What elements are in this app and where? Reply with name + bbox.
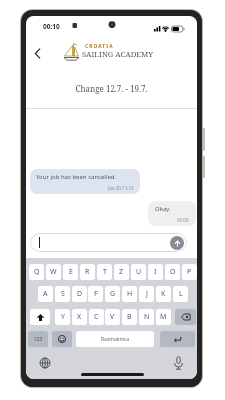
staticText: P [187,267,192,277]
button[interactable]: E [63,264,78,280]
button[interactable]: Okay. [148,201,196,226]
button[interactable]: B [122,309,137,325]
button[interactable]: Z [114,264,129,280]
button[interactable] [39,357,51,369]
button[interactable]: Your job has been cancelled. [30,169,140,194]
staticText: Q [34,267,40,277]
button[interactable]: 123 [28,331,48,347]
staticText: N [144,312,150,322]
staticText: W [50,267,57,277]
staticText: Y [61,312,65,322]
button[interactable]: Q [29,264,44,280]
button[interactable]: U [131,264,146,280]
button[interactable]: W [46,264,61,280]
staticText: Z [119,267,124,277]
button[interactable]: R [80,264,95,280]
staticText: 00:10 [43,22,60,31]
button[interactable] [52,331,72,347]
button[interactable]: D [72,286,87,302]
staticText: K [161,289,166,299]
button[interactable] [30,309,50,325]
button[interactable]: H [122,286,137,302]
staticText: Change 12.7. - 19.7. [26,83,197,94]
button[interactable]: X [72,309,87,325]
staticText: U [136,267,142,277]
staticText: Okay. [155,205,171,213]
button[interactable]: C [89,309,104,325]
staticText: A [43,289,48,299]
staticText: G [110,289,116,299]
button[interactable]: J [139,286,154,302]
staticText: 123 [34,336,43,343]
staticText: T [103,267,107,277]
staticText: 00:09 [177,217,189,223]
staticText: Jan 30,11:15 [108,185,134,191]
staticText: CROATIA [85,43,114,50]
staticText: E [69,267,73,277]
button[interactable]: V [105,309,120,325]
staticText: V [110,312,115,322]
button[interactable] [170,236,184,250]
button[interactable]: A [38,286,53,302]
button[interactable]: I [148,264,163,280]
staticText: F [94,289,98,299]
staticText: Razmaknica [101,336,130,343]
button[interactable]: G [105,286,120,302]
button[interactable]: Razmaknica [76,331,154,347]
button[interactable]: F [88,286,103,302]
button[interactable] [34,48,41,59]
staticText: SAILING ACADEMY [82,49,154,59]
button[interactable]: L [173,286,188,302]
staticText: D [77,289,83,299]
staticText: M [160,312,167,322]
button[interactable] [175,309,196,325]
button[interactable] [30,233,187,252]
button[interactable] [173,356,184,370]
staticText: B [127,312,132,322]
button[interactable]: S [55,286,70,302]
staticText: R [85,267,90,277]
button[interactable]: N [139,309,154,325]
staticText: I [154,267,157,277]
staticText: X [77,312,82,322]
button[interactable] [160,331,195,347]
staticText: H [127,289,133,299]
staticText: J [146,289,148,299]
button[interactable]: P [182,264,197,280]
button[interactable]: O [165,264,180,280]
button[interactable]: M [156,309,171,325]
staticText: C [94,312,99,322]
staticText: S [61,289,65,299]
staticText: L [179,289,183,299]
staticText: Your job has been cancelled. [36,173,117,181]
staticText: O [170,267,176,277]
button[interactable]: Y [55,309,70,325]
button[interactable]: K [156,286,171,302]
button[interactable]: T [97,264,112,280]
